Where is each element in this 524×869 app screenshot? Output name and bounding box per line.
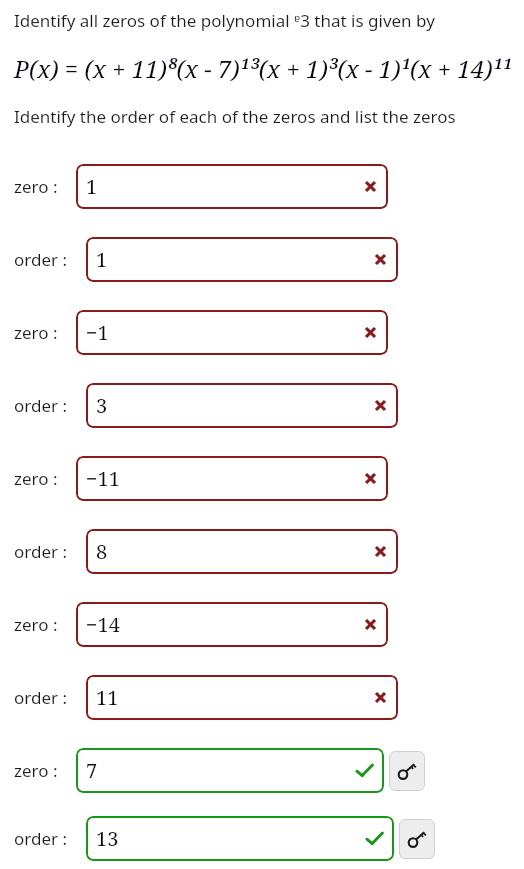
button[interactable]: 7 (76, 748, 384, 793)
staticText: zero : (14, 467, 71, 490)
button[interactable]: 8 (86, 529, 398, 574)
button[interactable]: −11 (76, 456, 388, 501)
button[interactable]: Show answer key (399, 819, 435, 859)
button[interactable]: 13 (86, 816, 394, 861)
staticText: Identify all zeros of the polynomial ᵄ3 … (14, 9, 435, 32)
staticText: zero : (14, 759, 71, 782)
staticText: order : (14, 394, 81, 417)
staticText: 3 (96, 392, 108, 419)
staticText: 1 (86, 173, 98, 200)
staticText: −11 (86, 465, 120, 492)
staticText: −1 (86, 319, 109, 346)
staticText: Identify the order of each of the zeros … (14, 105, 456, 128)
button[interactable]: −1 (76, 310, 388, 355)
staticText: −14 (86, 611, 120, 638)
staticText: order : (14, 540, 81, 563)
staticText: 7 (86, 757, 98, 784)
staticText: order : (14, 827, 81, 850)
staticText: order : (14, 248, 81, 271)
staticText: zero : (14, 321, 71, 344)
staticText: 8 (96, 538, 108, 565)
staticText: zero : (14, 613, 71, 636)
staticText: zero : (14, 175, 71, 198)
button[interactable]: −14 (76, 602, 388, 647)
staticText: P(x) = (x + 11)⁸(x − 7)¹³(x + 1)³(x − 1)… (14, 52, 512, 85)
button[interactable]: 11 (86, 675, 398, 720)
button[interactable]: 1 (86, 237, 398, 282)
button[interactable]: Show answer key (389, 751, 425, 791)
button[interactable]: 1 (76, 164, 388, 209)
button[interactable]: 3 (86, 383, 398, 428)
staticText: 13 (96, 825, 119, 852)
staticText: 11 (96, 684, 119, 711)
staticText: order : (14, 686, 81, 709)
staticText: 1 (96, 246, 108, 273)
